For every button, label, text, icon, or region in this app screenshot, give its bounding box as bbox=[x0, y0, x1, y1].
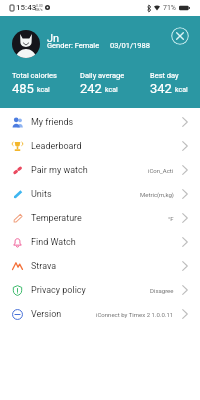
staticText: Temperature bbox=[31, 213, 82, 224]
staticText: iConnect by Timex 2 1.0.0.11 bbox=[96, 311, 174, 318]
staticText: 242 bbox=[80, 81, 102, 96]
staticText: KB/s bbox=[35, 8, 43, 12]
staticText: Version bbox=[31, 309, 62, 320]
button[interactable]: Temperature bbox=[0, 206, 200, 230]
staticText: 485 bbox=[12, 81, 34, 96]
button[interactable]: Pair my watch bbox=[0, 158, 200, 182]
button[interactable]: Strava bbox=[0, 254, 200, 278]
staticText: 15:43 bbox=[16, 3, 37, 12]
button[interactable]: Close bbox=[171, 27, 189, 45]
button[interactable]: Leaderboard bbox=[0, 134, 200, 158]
staticText: 0.00 bbox=[36, 4, 43, 8]
staticText: 71% bbox=[163, 4, 176, 12]
staticText: Leaderboard bbox=[31, 141, 82, 152]
button[interactable]: Units bbox=[0, 182, 200, 206]
staticText: Gender: Female bbox=[47, 41, 100, 50]
button[interactable]: Find Watch bbox=[0, 230, 200, 254]
staticText: Disagree bbox=[150, 287, 174, 294]
staticText: 03/01/1988 bbox=[110, 41, 150, 50]
staticText: Privacy policy bbox=[31, 285, 86, 296]
button[interactable]: Version bbox=[0, 302, 200, 326]
staticText: °F bbox=[168, 215, 174, 222]
button[interactable]: Privacy policy bbox=[0, 278, 200, 302]
staticText: Pair my watch bbox=[31, 165, 88, 176]
staticText: My friends bbox=[31, 117, 74, 128]
staticText: Daily average bbox=[80, 71, 125, 80]
button[interactable]: My friends bbox=[0, 110, 200, 134]
staticText: kcal bbox=[37, 86, 50, 94]
staticText: Strava bbox=[31, 261, 57, 272]
staticText: Units bbox=[31, 189, 52, 200]
staticText: Metric(m,kg) bbox=[140, 191, 174, 198]
staticText: 342 bbox=[150, 81, 172, 96]
staticText: Find Watch bbox=[31, 237, 76, 248]
staticText: kcal bbox=[175, 86, 188, 94]
staticText: kcal bbox=[105, 86, 118, 94]
staticText: Jn bbox=[47, 32, 60, 45]
staticText: Best day bbox=[150, 71, 179, 80]
staticText: iCon_Acti bbox=[148, 167, 174, 174]
staticText: Total calories bbox=[12, 71, 57, 80]
